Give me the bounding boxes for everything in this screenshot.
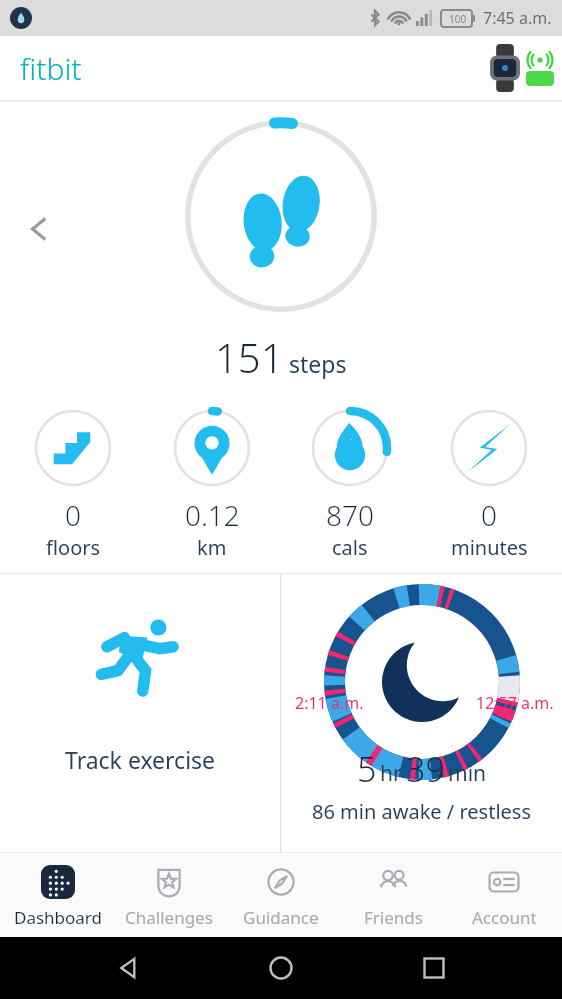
staticText: Account	[472, 906, 537, 929]
staticText: hr	[380, 759, 402, 788]
button[interactable]: 870	[285, 404, 415, 561]
staticText: Friends	[364, 906, 423, 929]
button[interactable]: Previous	[0, 108, 562, 398]
staticText: 0	[65, 496, 81, 534]
button[interactable]: 0	[424, 404, 554, 561]
button[interactable]: Home	[257, 944, 305, 992]
staticText: cals	[332, 534, 368, 561]
staticText: 39	[406, 746, 445, 792]
button[interactable]: Track exercise	[0, 574, 280, 853]
other: Previous	[18, 207, 62, 251]
staticText: Guidance	[243, 906, 319, 929]
staticText: 86 min awake / restless	[312, 798, 531, 825]
button[interactable]: Guidance	[227, 855, 335, 937]
staticText: minutes	[451, 534, 528, 561]
staticText: 151	[215, 330, 284, 384]
button[interactable]: Recents	[410, 944, 458, 992]
button[interactable]: Device sync status	[488, 44, 554, 92]
staticText: Dashboard	[14, 906, 103, 929]
staticText: 0.12	[185, 496, 240, 534]
staticText: 7:45 a.m.	[483, 7, 552, 29]
staticText: 870	[326, 496, 374, 534]
button[interactable]: 0	[8, 404, 138, 561]
button[interactable]: 0.12	[147, 404, 277, 561]
staticText: 2:11 a.m.	[295, 692, 364, 714]
button[interactable]: Challenges	[115, 855, 223, 937]
staticText: fitbit	[20, 48, 82, 89]
button[interactable]: Back	[105, 944, 153, 992]
staticText: 5	[357, 746, 377, 792]
staticText: floors	[46, 534, 101, 561]
staticText: Challenges	[125, 906, 213, 929]
button[interactable]: Dashboard	[4, 855, 112, 937]
staticText: 100	[449, 12, 467, 26]
staticText: km	[197, 534, 227, 561]
staticText: min	[448, 759, 487, 788]
button[interactable]: Friends	[339, 855, 447, 937]
staticText: steps	[289, 348, 347, 379]
staticText: Track exercise	[65, 744, 216, 775]
staticText: 0	[481, 496, 497, 534]
staticText: 12:57 a.m.	[476, 692, 554, 714]
button[interactable]: Account	[450, 855, 558, 937]
button[interactable]: 2:11 a.m.	[281, 574, 562, 853]
